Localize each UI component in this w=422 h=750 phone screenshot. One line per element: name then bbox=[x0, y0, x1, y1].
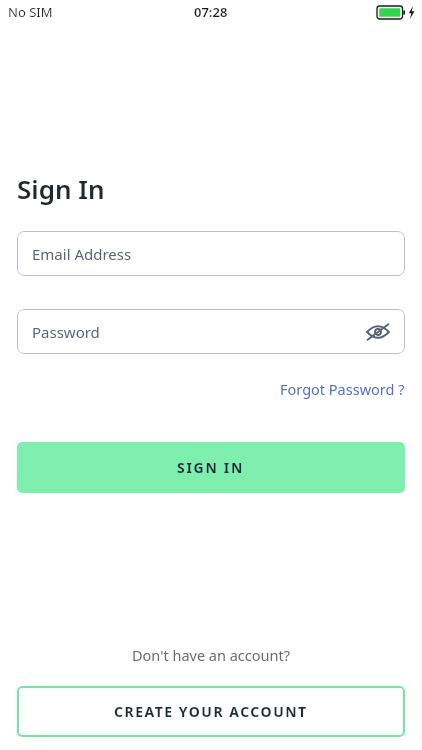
button[interactable]: Email Address bbox=[17, 231, 405, 276]
button[interactable]: Show password bbox=[361, 315, 395, 349]
staticText: Sign In bbox=[17, 171, 105, 206]
staticText: Forgot Password ? bbox=[280, 379, 405, 399]
staticText: Email Address bbox=[32, 244, 132, 264]
staticText: Password bbox=[32, 322, 100, 342]
button[interactable]: Password bbox=[17, 309, 405, 354]
button[interactable]: Forgot Password ? bbox=[280, 379, 405, 399]
staticText: CREATE YOUR ACCOUNT bbox=[114, 702, 308, 721]
staticText: 07:28 bbox=[194, 3, 228, 21]
staticText: SIGN IN bbox=[177, 458, 245, 477]
staticText: Don't have an account? bbox=[132, 645, 290, 665]
staticText: No SIM bbox=[8, 3, 53, 21]
button[interactable]: CREATE YOUR ACCOUNT bbox=[17, 686, 405, 737]
button[interactable]: SIGN IN bbox=[17, 442, 405, 493]
